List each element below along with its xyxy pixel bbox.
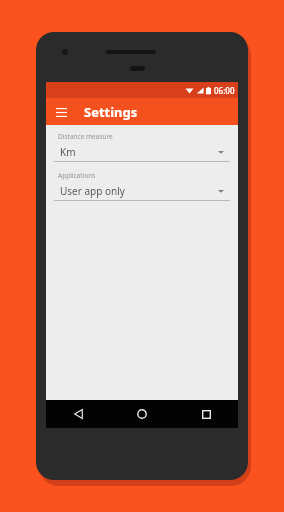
button[interactable]: Applications bbox=[54, 171, 230, 201]
staticText: Applications bbox=[58, 171, 96, 180]
button[interactable]: Recent apps bbox=[174, 400, 238, 428]
staticText: Distance measure bbox=[58, 132, 113, 141]
button[interactable]: Open navigation menu bbox=[52, 103, 70, 121]
staticText: User app only bbox=[60, 184, 218, 198]
staticText: Settings bbox=[84, 103, 138, 121]
button[interactable]: Back bbox=[46, 400, 110, 428]
button[interactable]: Home bbox=[110, 400, 174, 428]
button[interactable]: Distance measure bbox=[54, 132, 230, 162]
staticText: Km bbox=[60, 145, 218, 159]
staticText: 06:00 bbox=[214, 85, 235, 96]
